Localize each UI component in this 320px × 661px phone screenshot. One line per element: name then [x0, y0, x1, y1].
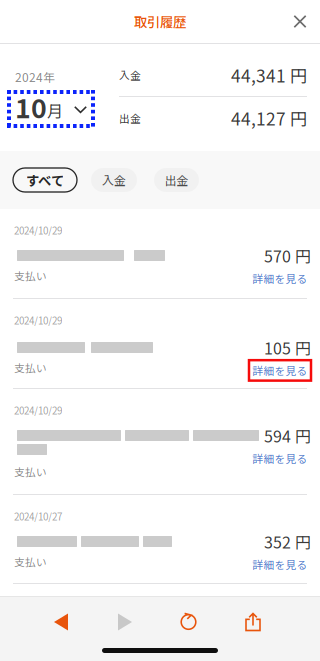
staticText: 352 円: [264, 530, 311, 553]
button[interactable]: 出金: [154, 168, 199, 192]
staticText: 出金: [119, 110, 141, 126]
staticText: 月: [47, 99, 63, 122]
staticText: 支払い: [14, 268, 47, 283]
staticText: 44,127 円: [231, 105, 307, 131]
staticText: 支払い: [14, 360, 47, 375]
staticText: 出金: [164, 171, 188, 189]
staticText: 詳細を見る: [252, 451, 307, 466]
button[interactable]: 閉じる: [282, 3, 318, 39]
button[interactable]: すべて: [13, 168, 77, 192]
button[interactable]: 2024年: [0, 44, 119, 151]
staticText: 10: [15, 87, 47, 126]
button[interactable]: 戻る: [29, 605, 93, 639]
staticText: 594 円: [264, 424, 311, 447]
staticText: 2024/10/27: [14, 509, 62, 523]
staticText: 44,341 円: [231, 62, 307, 88]
staticText: 詳細を見る: [252, 557, 307, 572]
staticText: 入金: [102, 171, 126, 189]
button[interactable]: 共有: [221, 605, 285, 639]
staticText: 2024年: [15, 68, 55, 85]
staticText: 取引履歴: [134, 12, 186, 31]
staticText: すべて: [26, 170, 64, 190]
button[interactable]: 進む: [93, 605, 157, 639]
staticText: 支払い: [14, 464, 47, 479]
button[interactable]: 詳細を見る: [249, 448, 311, 469]
button[interactable]: 詳細を見る: [249, 554, 311, 575]
staticText: 570 円: [264, 244, 311, 267]
staticText: 詳細を見る: [252, 363, 307, 378]
staticText: 支払い: [14, 554, 47, 569]
staticText: 入金: [119, 67, 141, 83]
button[interactable]: 再読み込み: [157, 605, 221, 639]
button[interactable]: 入金: [91, 168, 137, 192]
staticText: 2024/10/29: [14, 313, 62, 327]
staticText: 2024/10/29: [14, 403, 62, 417]
staticText: 105 円: [264, 336, 311, 359]
staticText: 詳細を見る: [252, 271, 307, 286]
button[interactable]: 詳細を見る: [249, 360, 311, 381]
staticText: 2024/10/29: [14, 223, 62, 237]
button[interactable]: 詳細を見る: [249, 268, 311, 289]
